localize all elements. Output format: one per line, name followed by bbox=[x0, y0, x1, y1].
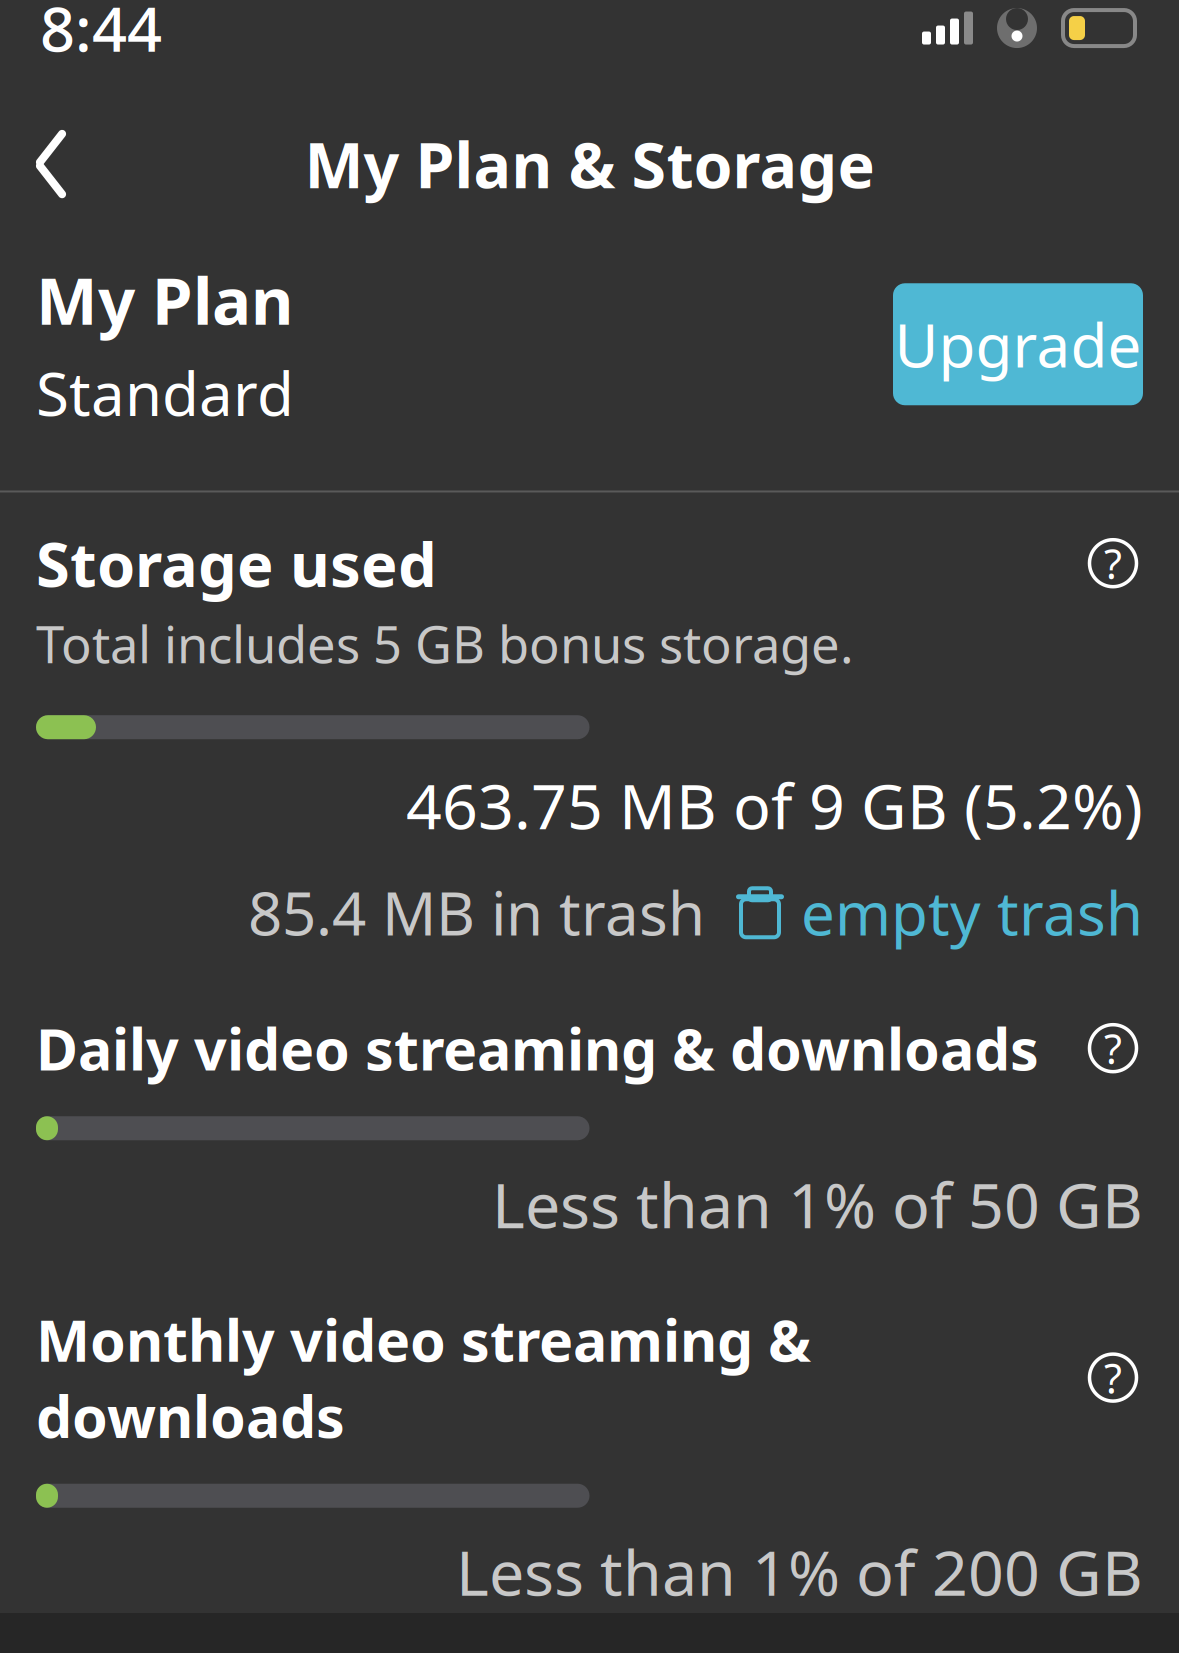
staticText: Storage used bbox=[36, 522, 437, 604]
staticText: 8:44 bbox=[40, 0, 162, 69]
staticText: 463.75 MB of 9 GB (5.2%) bbox=[406, 763, 1143, 846]
button[interactable]: Upgrade bbox=[893, 283, 1143, 405]
staticText: Monthly video streaming & downloads bbox=[36, 1301, 811, 1454]
staticText: Daily video streaming & downloads bbox=[36, 1010, 1039, 1086]
staticText: Less than 1% of 200 GB bbox=[456, 1530, 1143, 1613]
staticText: My Plan & Storage bbox=[304, 122, 874, 206]
staticText: ? bbox=[1104, 1350, 1122, 1405]
staticText: 85.4 MB in trash bbox=[248, 872, 705, 952]
button[interactable]: empty trash bbox=[705, 872, 1143, 952]
staticText: empty trash bbox=[801, 872, 1143, 952]
staticText: Standard bbox=[36, 353, 294, 432]
button[interactable]: Back bbox=[0, 113, 108, 215]
staticText: ? bbox=[1104, 536, 1122, 591]
staticText: Upgrade bbox=[894, 304, 1141, 384]
staticText: Total includes 5 GB bonus storage. bbox=[36, 610, 854, 677]
staticText: ? bbox=[1104, 1021, 1122, 1076]
button[interactable]: Help bbox=[1083, 1348, 1143, 1408]
staticText: My Plan bbox=[36, 256, 293, 343]
staticText: Less than 1% of 50 GB bbox=[492, 1162, 1143, 1245]
button[interactable]: Help bbox=[1083, 1018, 1143, 1078]
button[interactable]: Help bbox=[1083, 533, 1143, 593]
